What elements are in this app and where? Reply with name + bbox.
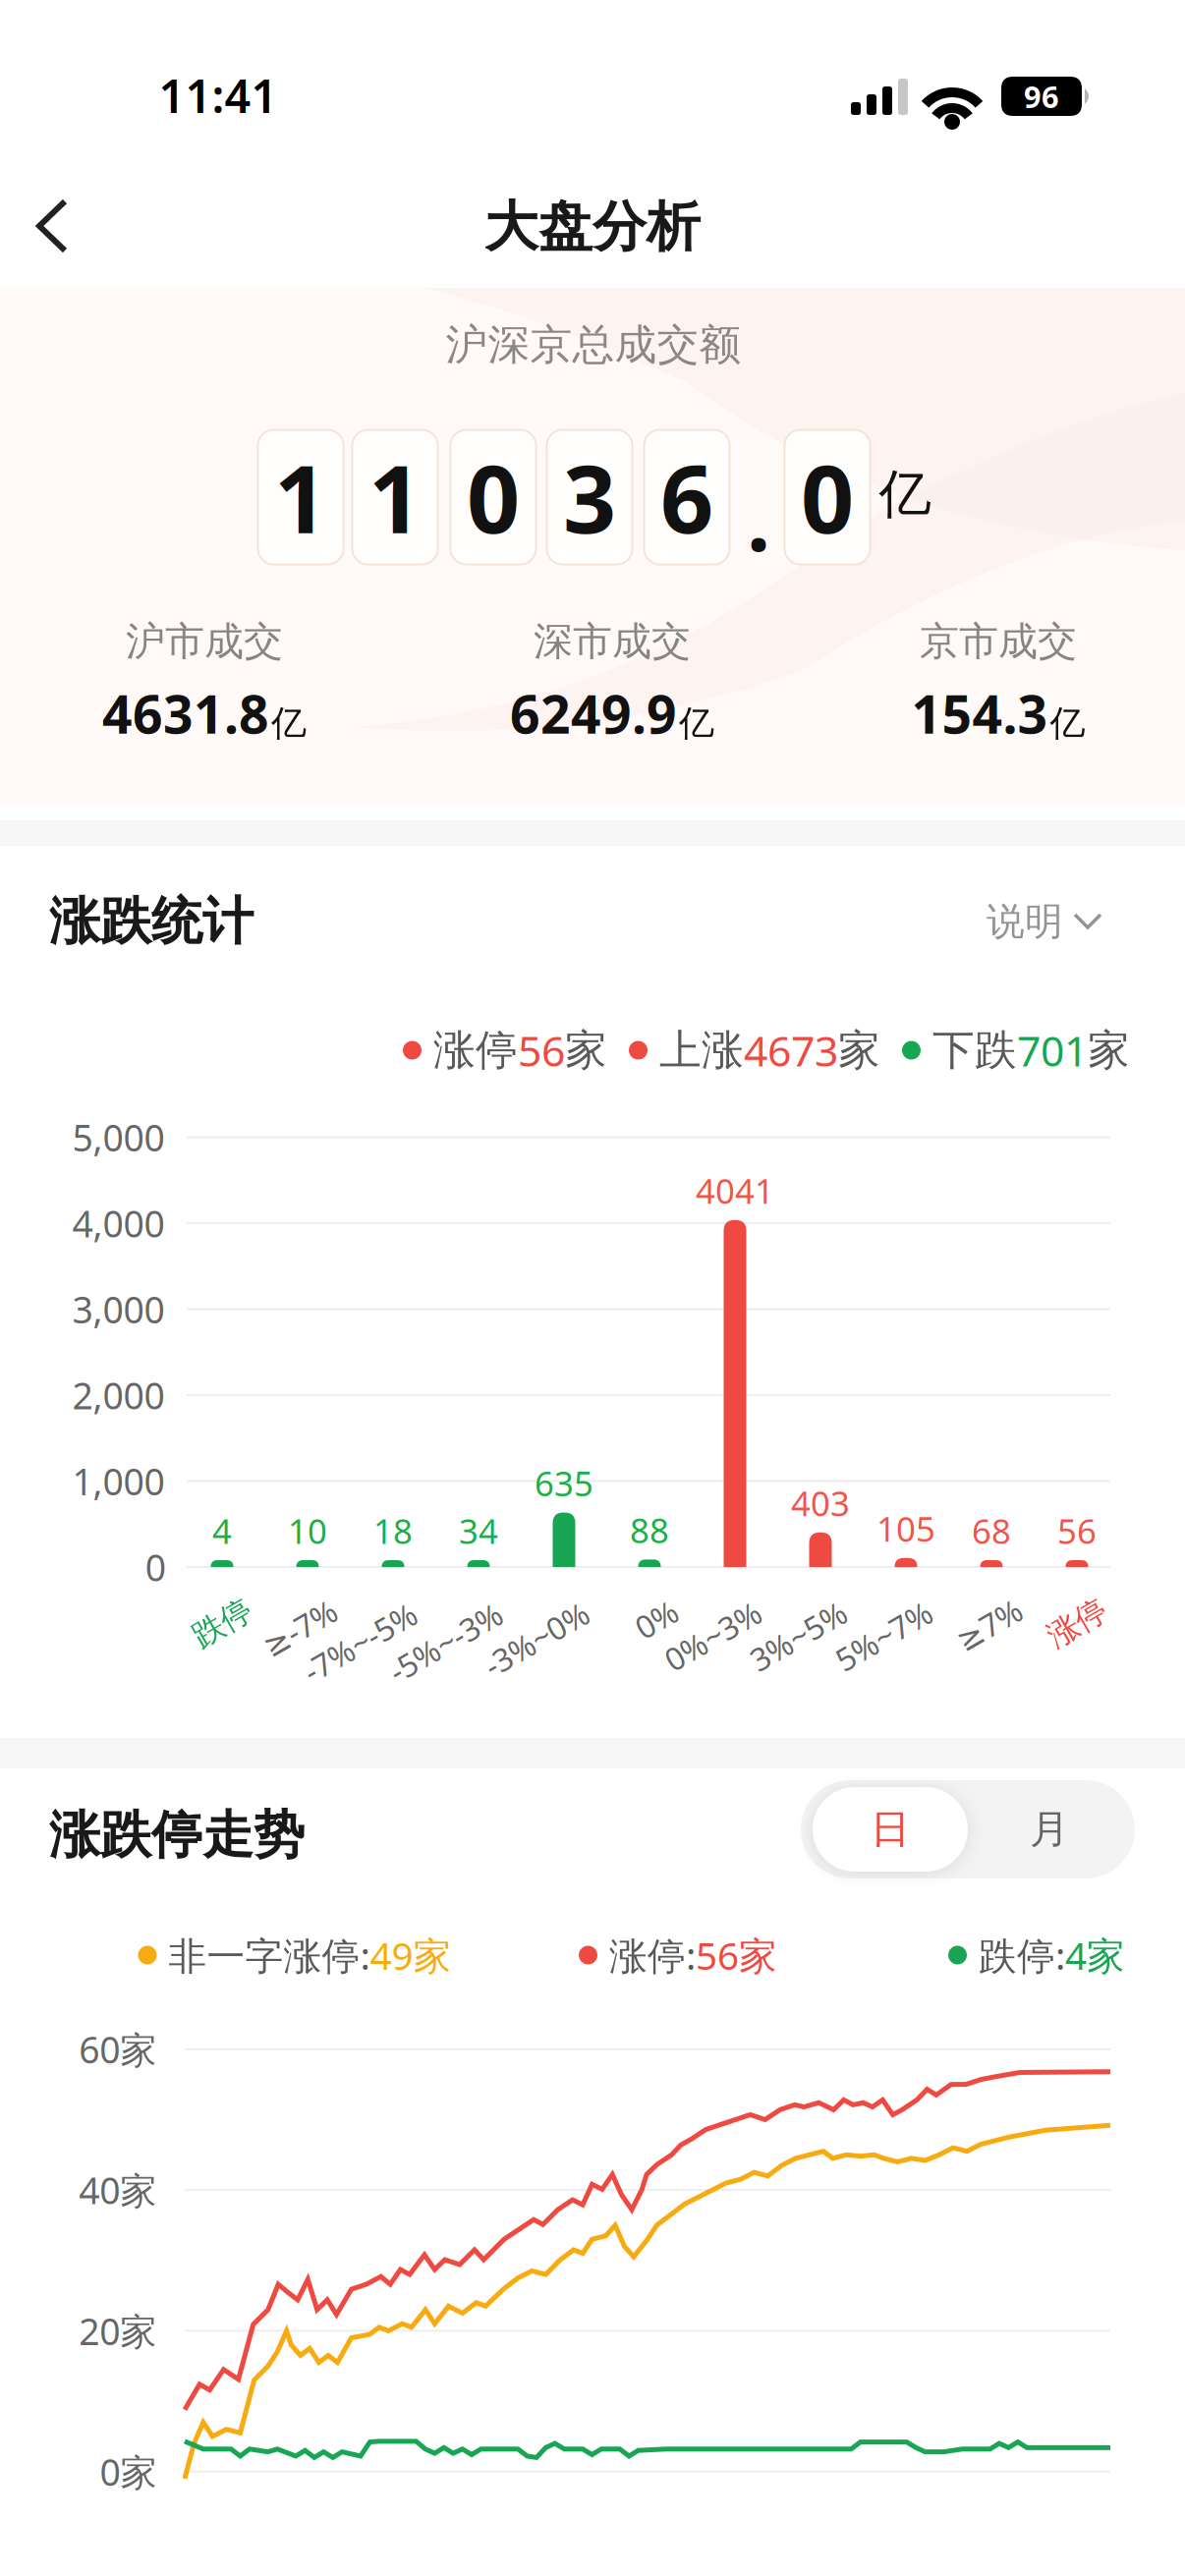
staticText: 40家 bbox=[79, 2166, 156, 2214]
staticText: 亿 bbox=[679, 702, 714, 745]
staticText: 1 bbox=[274, 435, 327, 559]
staticText: 0 bbox=[145, 1543, 166, 1591]
staticText: -5%~-3% bbox=[383, 1621, 508, 1663]
staticText: 56 bbox=[1057, 1508, 1097, 1553]
staticText: 154.3 bbox=[911, 678, 1048, 748]
staticText: 京市成交 bbox=[920, 617, 1077, 666]
staticText: 2,000 bbox=[72, 1371, 165, 1419]
staticText: 涨停 bbox=[1046, 1604, 1109, 1642]
staticText: 沪市成交 bbox=[126, 617, 283, 666]
staticText: 1,000 bbox=[72, 1457, 165, 1505]
staticText: 家 bbox=[1088, 1025, 1130, 1076]
staticText: 0% bbox=[634, 1598, 679, 1640]
staticText: 56家 bbox=[696, 1930, 777, 1980]
staticText: 403 bbox=[791, 1480, 850, 1526]
staticText: 跌停: bbox=[979, 1930, 1065, 1980]
staticText: 34 bbox=[459, 1508, 498, 1553]
staticText: 4,000 bbox=[72, 1199, 165, 1248]
staticText: 日 bbox=[871, 1805, 910, 1853]
staticText: 说明 bbox=[987, 898, 1063, 945]
staticText: -3%~0% bbox=[479, 1618, 594, 1660]
staticText: 4041 bbox=[696, 1168, 774, 1213]
staticText: 5,000 bbox=[72, 1113, 165, 1162]
staticText: 635 bbox=[535, 1460, 593, 1506]
staticText: 105 bbox=[876, 1506, 935, 1551]
staticText: -7%~-5% bbox=[297, 1621, 423, 1663]
staticText: 深市成交 bbox=[534, 617, 691, 666]
button[interactable]: 日 bbox=[813, 1787, 968, 1872]
staticText: 下跌 bbox=[932, 1025, 1017, 1076]
button[interactable]: 月 bbox=[976, 1787, 1123, 1872]
staticText: ≥-7% bbox=[260, 1607, 340, 1648]
button[interactable]: 说明 bbox=[987, 898, 1102, 945]
staticText: 20家 bbox=[79, 2306, 156, 2355]
staticText: 88 bbox=[630, 1507, 669, 1553]
staticText: 涨跌统计 bbox=[49, 890, 254, 953]
staticText: 4家 bbox=[1065, 1930, 1125, 1980]
staticText: 68 bbox=[972, 1508, 1011, 1553]
staticText: 大盘分析 bbox=[484, 194, 701, 260]
staticText: 6 bbox=[660, 435, 713, 559]
staticText: 1 bbox=[368, 435, 422, 559]
staticText: 49家 bbox=[370, 1930, 451, 1980]
staticText: 月 bbox=[1030, 1805, 1069, 1853]
staticText: 4631.8 bbox=[102, 678, 269, 748]
staticText: 涨停 bbox=[433, 1025, 518, 1076]
staticText: 60家 bbox=[79, 2025, 156, 2074]
staticText: 0 bbox=[467, 435, 520, 559]
staticText: . bbox=[747, 463, 770, 574]
staticText: 11:41 bbox=[159, 65, 278, 126]
staticText: 亿 bbox=[879, 462, 931, 526]
staticText: 亿 bbox=[1050, 702, 1085, 745]
staticText: 上涨 bbox=[659, 1025, 744, 1076]
staticText: 4 bbox=[212, 1508, 232, 1553]
staticText: 0家 bbox=[100, 2447, 157, 2496]
staticText: 亿 bbox=[271, 702, 307, 745]
button[interactable]: Back bbox=[35, 188, 94, 264]
staticText: 非一字涨停: bbox=[169, 1930, 370, 1980]
staticText: 3%~5% bbox=[745, 1615, 852, 1657]
staticText: 701 bbox=[1017, 1022, 1088, 1078]
staticText: 沪深京总成交额 bbox=[446, 319, 741, 371]
staticText: 18 bbox=[373, 1508, 413, 1553]
staticText: 6249.9 bbox=[510, 678, 677, 748]
staticText: 涨跌停走势 bbox=[49, 1804, 305, 1867]
staticText: 96 bbox=[1024, 76, 1059, 116]
staticText: 0 bbox=[801, 435, 854, 559]
staticText: 跌停 bbox=[191, 1604, 254, 1642]
staticText: 家 bbox=[838, 1025, 880, 1076]
staticText: 3 bbox=[563, 435, 616, 559]
staticText: 5%~7% bbox=[831, 1615, 937, 1657]
staticText: 涨停: bbox=[609, 1930, 696, 1980]
staticText: 10 bbox=[288, 1508, 327, 1553]
staticText: 家 bbox=[565, 1025, 607, 1076]
staticText: 0%~3% bbox=[660, 1615, 766, 1657]
staticText: 56 bbox=[518, 1022, 565, 1078]
staticText: 4673 bbox=[744, 1022, 838, 1078]
staticText: ≥7% bbox=[954, 1604, 1025, 1645]
staticText: 3,000 bbox=[72, 1285, 165, 1333]
